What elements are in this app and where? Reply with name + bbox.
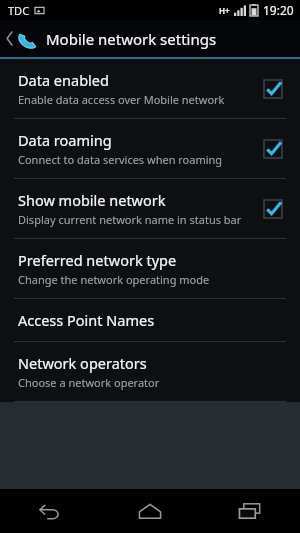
staticText: H+ xyxy=(219,5,230,16)
staticText: Mobile network settings xyxy=(46,29,217,49)
staticText: Enable data access over Mobile network xyxy=(18,92,225,107)
button[interactable]: Recent apps xyxy=(200,489,300,533)
staticText: Data roaming xyxy=(18,130,112,150)
button[interactable]: Toggle xyxy=(260,196,286,222)
button[interactable]: Back xyxy=(0,489,100,533)
staticText: Show mobile network xyxy=(18,190,166,210)
button[interactable]: Network operators xyxy=(0,342,300,401)
button[interactable]: Toggle xyxy=(260,136,286,162)
staticText: Preferred network type xyxy=(18,250,177,270)
button[interactable]: Home xyxy=(100,489,200,533)
button[interactable]: Data roaming xyxy=(0,119,300,178)
button[interactable]: Navigate up xyxy=(0,20,46,57)
button[interactable]: Show mobile network xyxy=(0,179,300,238)
staticText: Network operators xyxy=(18,353,147,373)
staticText: Access Point Names xyxy=(18,310,155,330)
staticText: TDC xyxy=(8,3,30,18)
staticText: Connect to data services when roaming xyxy=(18,152,223,167)
button[interactable]: Access Point Names xyxy=(0,299,300,341)
staticText: Change the network operating mode xyxy=(18,272,210,287)
button[interactable]: Toggle xyxy=(260,76,286,102)
staticText: 19:20 xyxy=(263,2,294,18)
button[interactable]: Data enabled xyxy=(0,59,300,118)
staticText: Data enabled xyxy=(18,70,109,90)
staticText: Choose a network operator xyxy=(18,375,160,390)
button[interactable]: Preferred network type xyxy=(0,239,300,298)
staticText: Display current network name in status b… xyxy=(18,212,242,227)
